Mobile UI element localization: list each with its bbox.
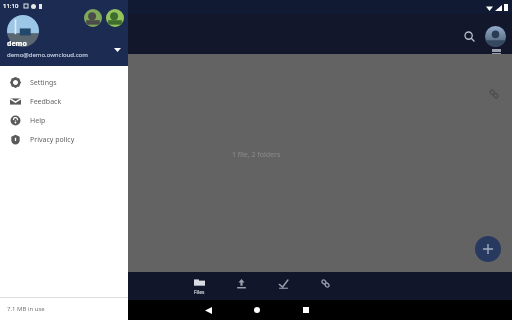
button[interactable]: Settings <box>0 73 128 92</box>
staticText: Files <box>194 289 205 296</box>
button[interactable]: Switch view <box>489 45 503 59</box>
staticText: demo@demo.owncloud.com <box>7 51 88 59</box>
button[interactable]: Recents <box>299 303 313 317</box>
button[interactable]: Search <box>457 24 481 48</box>
staticText: 7.1 MB in use <box>7 305 45 313</box>
button[interactable]: Navigation <box>228 272 254 300</box>
staticText: Settings <box>30 78 57 88</box>
button[interactable]: Add <box>475 236 501 262</box>
button[interactable]: Switch account <box>111 44 123 56</box>
button[interactable]: Navigation <box>312 272 338 300</box>
button[interactable]: Files <box>186 272 212 300</box>
staticText: Feedback <box>30 97 62 107</box>
staticText: 1 file, 2 folders <box>232 150 281 160</box>
button[interactable]: Account <box>84 9 102 27</box>
staticText: Help <box>30 116 46 126</box>
button[interactable]: Back <box>201 303 215 317</box>
staticText: 11:10 <box>3 2 19 10</box>
staticText: Privacy policy <box>30 135 75 145</box>
button[interactable]: Shared link <box>484 84 504 104</box>
button[interactable]: Feedback <box>0 92 128 111</box>
button[interactable]: Account <box>106 9 124 27</box>
staticText: demo <box>7 39 27 49</box>
button[interactable]: Navigation <box>270 272 296 300</box>
button[interactable]: Help <box>0 111 128 130</box>
button[interactable]: Account <box>485 26 506 47</box>
button[interactable]: Current account <box>7 15 39 47</box>
button[interactable]: Home <box>250 303 264 317</box>
button[interactable]: Privacy policy <box>0 130 128 149</box>
